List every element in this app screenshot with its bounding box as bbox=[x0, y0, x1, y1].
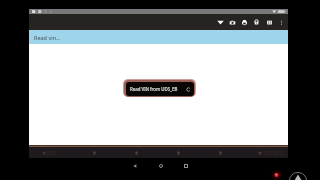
button[interactable]: Screenshot bbox=[227, 17, 237, 27]
button[interactable]: Read vin... bbox=[29, 30, 288, 44]
button[interactable]: Print bbox=[239, 17, 249, 27]
button[interactable]: Wi-Fi bbox=[215, 17, 225, 27]
button[interactable]: Lock bbox=[251, 17, 261, 27]
button[interactable]: Microphone bbox=[90, 149, 98, 157]
button[interactable]: Home bbox=[155, 160, 166, 171]
button[interactable]: Settings bbox=[258, 150, 284, 156]
staticText: Read vin... bbox=[34, 34, 61, 41]
button[interactable]: Previous bbox=[174, 149, 182, 157]
button[interactable]: Next bbox=[216, 149, 224, 157]
staticText: SETTINGS bbox=[263, 150, 284, 156]
staticText: Read VIN from UDS_EB bbox=[130, 86, 178, 92]
button[interactable]: Exit bbox=[42, 150, 57, 156]
button[interactable]: Download bbox=[132, 149, 140, 157]
staticText: EXIT bbox=[47, 150, 57, 156]
button[interactable]: Read VIN from UDS_EB bbox=[126, 82, 194, 96]
button[interactable]: Table view bbox=[264, 17, 274, 27]
button[interactable]: Recent apps bbox=[180, 160, 191, 171]
button[interactable]: More options bbox=[276, 17, 286, 27]
button[interactable]: Back bbox=[129, 160, 140, 171]
